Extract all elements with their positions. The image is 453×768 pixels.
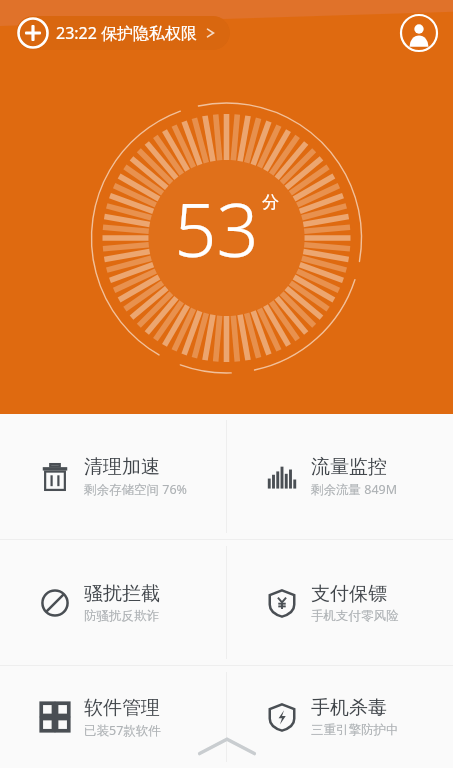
staticText: 23:22 保护隐私权限 — [56, 22, 198, 44]
staticText: 已装57款软件 — [84, 722, 161, 739]
staticText: 分 — [262, 192, 279, 213]
staticText: 手机杀毒 — [311, 696, 387, 720]
button[interactable]: 骚扰拦截 — [0, 540, 226, 665]
button[interactable]: Expand — [190, 732, 264, 762]
button[interactable]: 手机杀毒 — [227, 666, 453, 768]
button[interactable]: 流量监控 — [227, 414, 453, 539]
staticText: 清理加速 — [84, 455, 160, 479]
staticText: 支付保镖 — [311, 582, 387, 606]
staticText: 软件管理 — [84, 696, 160, 720]
staticText: 骚扰拦截 — [84, 582, 160, 606]
staticText: 流量监控 — [311, 455, 387, 479]
staticText: 剩余流量 849M — [311, 481, 398, 498]
button[interactable]: Profile — [399, 13, 439, 53]
button[interactable]: 23:22 保护隐私权限 — [16, 16, 230, 50]
staticText: 三重引擎防护中 — [311, 722, 399, 738]
button[interactable]: 清理加速 — [0, 414, 226, 539]
staticText: 防骚扰反欺诈 — [84, 608, 159, 624]
staticText: 剩余存储空间 76% — [84, 481, 187, 498]
button[interactable]: 软件管理 — [0, 666, 226, 768]
button[interactable]: 支付保镖 — [227, 540, 453, 665]
staticText: 53 — [174, 178, 259, 279]
staticText: 手机支付零风险 — [311, 608, 399, 624]
